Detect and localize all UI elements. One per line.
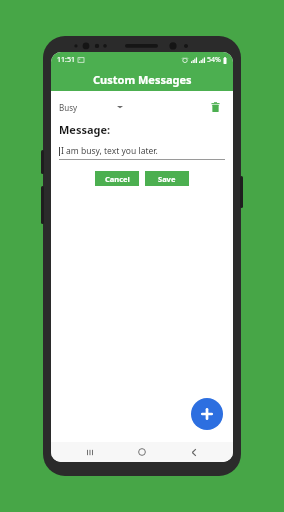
button[interactable]: Back: [181, 442, 207, 462]
button[interactable]: Busy: [59, 97, 127, 117]
button[interactable]: Delete: [205, 97, 225, 117]
staticText: 54%: [207, 55, 221, 65]
button[interactable]: Home: [129, 442, 155, 462]
staticText: Message:: [59, 122, 111, 137]
staticText: 11:51: [57, 55, 75, 65]
staticText: Busy: [59, 102, 78, 113]
button[interactable]: Save: [145, 171, 189, 186]
staticText: Custom Messages: [93, 72, 192, 87]
button[interactable]: Add message: [191, 398, 223, 430]
staticText: Save: [158, 174, 176, 184]
button[interactable]: Cancel: [95, 171, 139, 186]
button[interactable]: Recents: [77, 442, 103, 462]
staticText: I am busy, text you later.: [61, 145, 158, 157]
staticText: Cancel: [105, 174, 130, 184]
